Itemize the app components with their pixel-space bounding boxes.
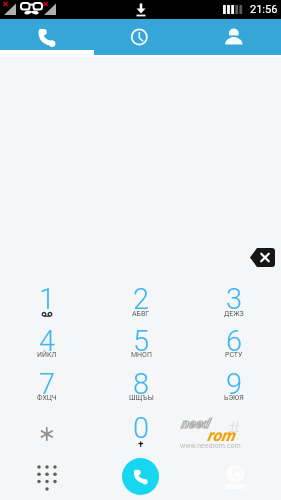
button[interactable] <box>122 458 159 495</box>
button[interactable] <box>94 407 188 450</box>
staticText: # <box>228 417 240 440</box>
staticText: www.needrom.com <box>180 442 241 450</box>
staticText: 6 <box>226 324 243 358</box>
staticText: ФХЦЧ <box>37 394 57 402</box>
staticText: 5 <box>133 324 150 358</box>
button[interactable] <box>248 246 278 269</box>
button[interactable] <box>0 320 94 363</box>
button[interactable] <box>0 363 94 406</box>
staticText: 21:56 <box>250 3 278 16</box>
staticText: 4 <box>39 324 56 358</box>
staticText: 8 <box>133 367 150 401</box>
button[interactable] <box>187 278 281 321</box>
staticText: 1 <box>39 282 56 316</box>
staticText: ШЩЪЫ <box>129 394 154 402</box>
staticText: 3 <box>226 282 243 316</box>
button[interactable] <box>187 320 281 363</box>
staticText: 2 <box>133 282 150 316</box>
button[interactable] <box>94 320 188 363</box>
button[interactable] <box>0 19 93 55</box>
button[interactable] <box>187 363 281 406</box>
staticText: + <box>138 439 144 451</box>
staticText: 7 <box>39 367 56 401</box>
button[interactable]: # <box>187 407 281 450</box>
button[interactable] <box>94 278 188 321</box>
button[interactable] <box>187 19 281 55</box>
button[interactable] <box>93 19 187 55</box>
button[interactable] <box>94 363 188 406</box>
staticText: ДЕЖЗ <box>224 310 244 318</box>
button[interactable] <box>14 455 80 500</box>
staticText: АБВГ <box>132 310 150 318</box>
staticText: РСТУ <box>225 351 243 359</box>
staticText: МНОП <box>131 351 152 359</box>
staticText: ЬЭЮЯ <box>224 394 244 402</box>
staticText: 9 <box>226 367 243 401</box>
staticText: need <box>181 416 209 431</box>
staticText: 0 <box>133 411 150 445</box>
staticText: ИЙКЛ <box>37 351 57 359</box>
staticText: rom <box>207 426 235 445</box>
button[interactable] <box>0 407 94 450</box>
button[interactable] <box>0 278 94 321</box>
